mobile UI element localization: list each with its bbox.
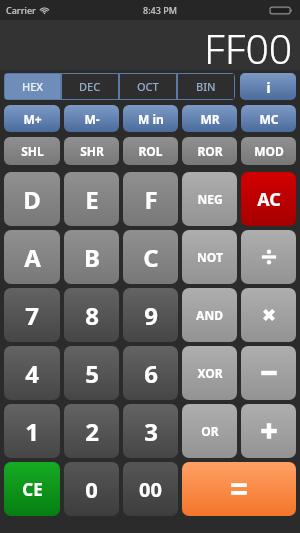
staticText: M- (84, 111, 100, 127)
button[interactable]: Divide (241, 230, 296, 284)
button[interactable]: OCT (120, 74, 176, 99)
staticText: C (143, 241, 159, 274)
staticText: DEC (79, 79, 101, 94)
staticText: CE (22, 478, 43, 501)
button[interactable]: 8 (64, 288, 119, 342)
button[interactable]: AC (241, 172, 296, 226)
staticText: 00 (139, 476, 162, 503)
button[interactable]: 1 (4, 404, 60, 458)
staticText: E (85, 183, 99, 216)
staticText: XOR (197, 365, 223, 381)
staticText: 8:43 PM (143, 4, 177, 16)
button[interactable]: 4 (4, 346, 60, 400)
button[interactable]: Add (241, 404, 296, 458)
button[interactable]: 5 (64, 346, 119, 400)
staticText: 7 (25, 299, 39, 332)
button[interactable]: M- (64, 105, 119, 132)
staticText: 2 (85, 415, 99, 448)
button[interactable]: SHL (4, 137, 60, 165)
staticText: MR (200, 111, 220, 127)
staticText: 0 (85, 474, 98, 504)
staticText: M in (138, 111, 164, 127)
staticText: 5 (85, 357, 99, 390)
staticText: AND (196, 307, 223, 323)
staticText: 8 (85, 299, 99, 332)
staticText: 6 (144, 357, 158, 390)
staticText: HEX (22, 79, 44, 94)
staticText: NOT (197, 249, 223, 265)
button[interactable]: AND (182, 288, 237, 342)
button[interactable]: B (64, 230, 119, 284)
button[interactable]: MC (241, 105, 296, 132)
button[interactable]: D (4, 172, 60, 226)
button[interactable]: Subtract (241, 346, 296, 400)
button[interactable]: CE (4, 462, 60, 516)
staticText: F (144, 183, 158, 216)
button[interactable]: NOT (182, 230, 237, 284)
staticText: FF00 (204, 20, 293, 67)
button[interactable]: 9 (123, 288, 178, 342)
button[interactable]: 2 (64, 404, 119, 458)
staticText: 4 (25, 357, 39, 390)
button[interactable]: 0 (64, 462, 119, 516)
staticText: OR (201, 423, 219, 439)
button[interactable]: C (123, 230, 178, 284)
staticText: i (266, 77, 271, 97)
button[interactable]: 3 (123, 404, 178, 458)
staticText: AC (257, 187, 281, 212)
button[interactable]: SHR (64, 137, 119, 165)
staticText: 1 (25, 415, 39, 448)
button[interactable]: M in (123, 105, 178, 132)
button[interactable]: Info (240, 73, 296, 100)
button[interactable]: ROL (123, 137, 178, 165)
button[interactable]: 7 (4, 288, 60, 342)
staticText: MC (259, 111, 279, 127)
button[interactable]: DEC (62, 74, 118, 99)
staticText: ROR (197, 143, 223, 159)
button[interactable]: Multiply (241, 288, 296, 342)
button[interactable]: E (64, 172, 119, 226)
button[interactable]: M+ (4, 105, 60, 132)
staticText: MOD (254, 143, 284, 159)
staticText: OCT (137, 79, 159, 94)
button[interactable]: MOD (241, 137, 296, 165)
button[interactable]: Equals (182, 462, 296, 516)
button[interactable]: A (4, 230, 60, 284)
button[interactable]: MR (182, 105, 237, 132)
staticText: D (23, 183, 41, 216)
staticText: A (24, 241, 41, 274)
button[interactable]: BIN (178, 74, 234, 99)
button[interactable]: NEG (182, 172, 237, 226)
button[interactable]: ROR (182, 137, 237, 165)
button[interactable]: HEX (5, 74, 60, 99)
staticText: 3 (144, 415, 158, 448)
button[interactable]: F (123, 172, 178, 226)
staticText: M+ (23, 111, 42, 127)
staticText: Carrier (6, 4, 36, 16)
staticText: BIN (196, 79, 216, 94)
button[interactable]: 6 (123, 346, 178, 400)
staticText: ROL (138, 143, 163, 159)
staticText: NEG (197, 191, 223, 207)
button[interactable]: 00 (123, 462, 178, 516)
staticText: SHR (80, 143, 104, 159)
staticText: B (84, 241, 100, 274)
staticText: SHL (21, 143, 44, 159)
staticText: 9 (144, 299, 158, 332)
button[interactable]: OR (182, 404, 237, 458)
button[interactable]: XOR (182, 346, 237, 400)
